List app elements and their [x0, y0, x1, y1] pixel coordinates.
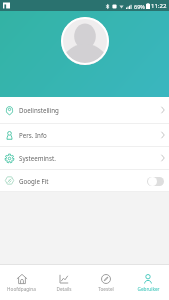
button[interactable]: Hoofdpagina — [0, 265, 43, 300]
button[interactable]: Doelinstelling — [0, 97, 169, 123]
button[interactable]: Google Fit — [0, 170, 169, 191]
staticText: Pers. Info — [19, 131, 47, 139]
staticText: 11:22 — [151, 2, 167, 10]
staticText: Gebruiker — [137, 286, 160, 292]
staticText: 69% — [134, 3, 145, 10]
staticText: Details — [56, 286, 72, 292]
staticText: Google Fit — [19, 177, 49, 185]
button[interactable]: Pers. Info — [0, 124, 169, 146]
button[interactable]: Profielfoto — [61, 17, 109, 65]
staticText: Hoofdpagina — [7, 286, 36, 292]
other: Open — [159, 154, 167, 162]
button[interactable]: Gebruiker — [127, 265, 169, 300]
other: Open — [159, 131, 167, 139]
staticText: Systeeminst. — [19, 154, 56, 162]
other: Open — [159, 106, 167, 114]
button[interactable]: Systeeminst. — [0, 147, 169, 169]
staticText: Toestel — [98, 286, 114, 292]
button[interactable]: Toestel — [85, 265, 127, 300]
button[interactable]: Details — [43, 265, 85, 300]
staticText: Doelinstelling — [19, 106, 59, 114]
button[interactable]: Google Fit aan/uit — [147, 176, 164, 186]
